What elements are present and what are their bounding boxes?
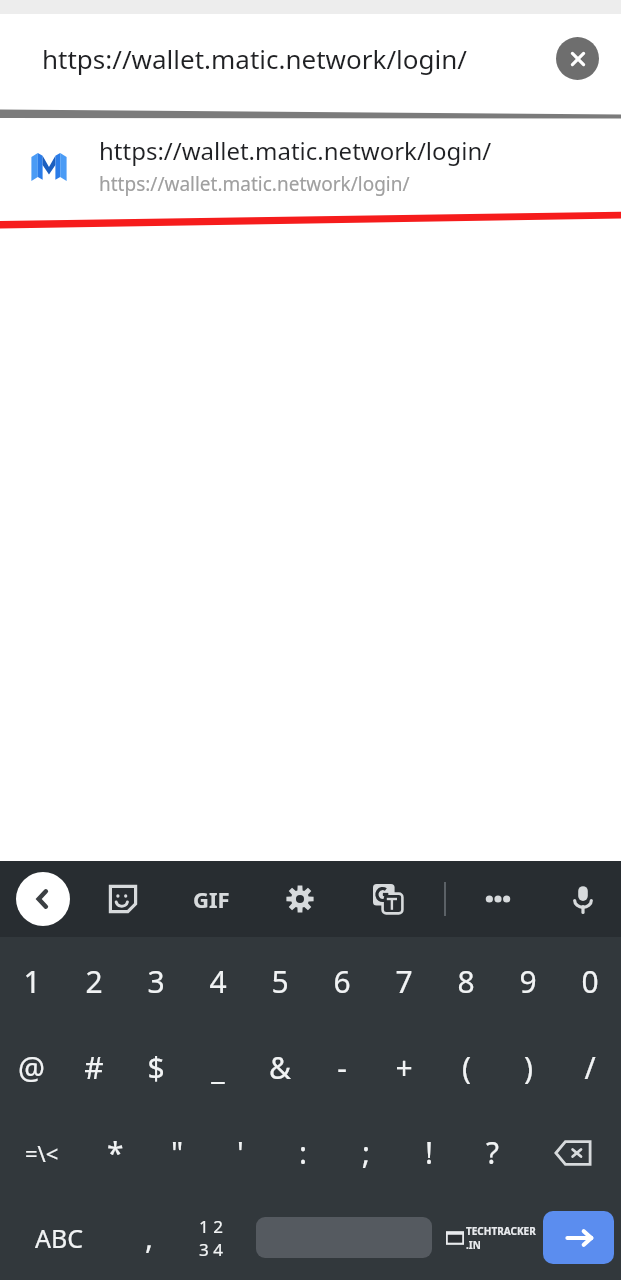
button[interactable]: -	[311, 1025, 373, 1110]
button[interactable]: Translate	[363, 874, 413, 924]
button[interactable]: 6	[311, 937, 373, 1025]
button[interactable]: !	[398, 1110, 461, 1195]
button[interactable]: $	[125, 1025, 187, 1110]
button[interactable]: Number pad	[180, 1195, 242, 1280]
button[interactable]: Backspace	[524, 1110, 621, 1195]
staticText: &	[269, 1047, 291, 1088]
staticText: ;	[362, 1132, 371, 1173]
button[interactable]: @	[0, 1025, 63, 1110]
staticText: 6	[333, 961, 351, 1002]
button[interactable]: ?	[461, 1110, 524, 1195]
button[interactable]: )	[497, 1025, 559, 1110]
button[interactable]: Keyboard settings	[275, 874, 325, 924]
button[interactable]: Space	[256, 1217, 432, 1258]
staticText: 8	[457, 961, 475, 1002]
staticText: '	[237, 1132, 244, 1173]
staticText: /	[584, 1047, 596, 1088]
button[interactable]: &	[249, 1025, 311, 1110]
button[interactable]: 7	[373, 937, 435, 1025]
button[interactable]: 2	[63, 937, 125, 1025]
staticText: #	[84, 1047, 104, 1088]
staticText: 5	[271, 961, 289, 1002]
staticText: 1	[23, 961, 41, 1002]
button[interactable]: https://wallet.matic.network/login/	[0, 125, 621, 205]
staticText: 7	[395, 961, 413, 1002]
button[interactable]: Stickers	[98, 874, 148, 924]
staticText: ABC	[35, 1221, 84, 1255]
staticText: @	[18, 1047, 45, 1088]
button[interactable]: 8	[435, 937, 497, 1025]
staticText: https://wallet.matic.network/login/	[99, 134, 492, 167]
staticText: )	[524, 1047, 533, 1088]
button[interactable]: 5	[249, 937, 311, 1025]
button[interactable]: ;	[335, 1110, 398, 1195]
staticText: =\<	[25, 1138, 59, 1168]
staticText: 3 4	[199, 1238, 223, 1261]
button[interactable]: 4	[187, 937, 249, 1025]
staticText: ,	[145, 1217, 154, 1258]
button[interactable]: 3	[125, 937, 187, 1025]
staticText: "	[171, 1132, 184, 1173]
staticText: https://wallet.matic.network/login/	[42, 41, 467, 76]
staticText: +	[395, 1047, 413, 1088]
staticText: -	[337, 1047, 347, 1088]
button[interactable]: :	[272, 1110, 335, 1195]
button[interactable]: /	[559, 1025, 621, 1110]
button[interactable]: =\<	[0, 1110, 84, 1195]
staticText: https://wallet.matic.network/login/	[99, 171, 410, 197]
button[interactable]: Clear text	[556, 37, 599, 80]
staticText: *	[107, 1132, 124, 1173]
staticText: 9	[519, 961, 537, 1002]
staticText: 1 2	[199, 1215, 223, 1238]
button[interactable]: 9	[497, 937, 559, 1025]
staticText: TECHTRACKER.IN	[466, 1224, 536, 1252]
button[interactable]: *	[84, 1110, 146, 1195]
button[interactable]: _	[187, 1025, 249, 1110]
button[interactable]: 0	[559, 937, 621, 1025]
staticText: ?	[486, 1132, 500, 1173]
staticText: 2	[85, 961, 103, 1002]
button[interactable]: Back	[16, 872, 70, 926]
button[interactable]: More options	[473, 874, 523, 924]
button[interactable]: (	[435, 1025, 497, 1110]
staticText: _	[211, 1047, 225, 1088]
staticText: 0	[581, 961, 599, 1002]
button[interactable]: +	[373, 1025, 435, 1110]
staticText: $	[147, 1047, 165, 1088]
button[interactable]: Enter	[543, 1211, 614, 1264]
staticText: (	[462, 1047, 471, 1088]
button[interactable]: "	[146, 1110, 209, 1195]
button[interactable]: ,	[118, 1195, 180, 1280]
staticText: 4	[209, 961, 227, 1002]
staticText: !	[425, 1132, 434, 1173]
staticText: GIF	[193, 884, 230, 914]
staticText: :	[299, 1132, 308, 1173]
button[interactable]: GIF	[183, 871, 239, 927]
button[interactable]: 1	[0, 937, 63, 1025]
staticText: 3	[147, 961, 165, 1002]
button[interactable]: #	[63, 1025, 125, 1110]
button[interactable]: '	[209, 1110, 272, 1195]
button[interactable]: https://wallet.matic.network/login/	[0, 14, 621, 103]
button[interactable]: Voice input	[557, 873, 609, 925]
button[interactable]: ABC	[0, 1195, 118, 1280]
